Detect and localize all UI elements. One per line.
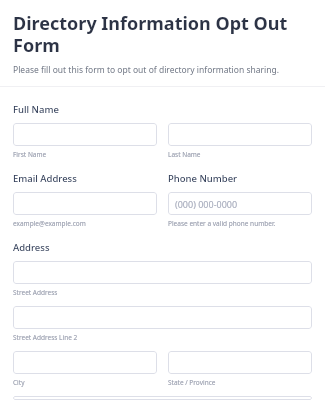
- staticText: Please enter a valid phone number.: [168, 219, 276, 228]
- staticText: Directory Information Opt Out Form: [13, 11, 312, 58]
- staticText: Full Name: [13, 103, 59, 116]
- button[interactable]: [13, 123, 157, 146]
- button[interactable]: [13, 396, 312, 400]
- button[interactable]: [168, 351, 312, 374]
- staticText: example@example.com: [13, 219, 86, 228]
- staticText: Email Address: [13, 172, 77, 185]
- staticText: State / Province: [168, 378, 216, 387]
- staticText: First Name: [13, 150, 47, 159]
- staticText: Please fill out this form to opt out of …: [13, 64, 279, 76]
- staticText: (000) 000-0000: [175, 198, 238, 210]
- staticText: City: [13, 378, 25, 387]
- staticText: Address: [13, 241, 50, 254]
- button[interactable]: [168, 123, 312, 146]
- staticText: Street Address: [13, 288, 58, 297]
- staticText: Phone Number: [168, 172, 238, 185]
- button[interactable]: [13, 192, 157, 215]
- button[interactable]: [13, 261, 312, 284]
- button[interactable]: [13, 351, 157, 374]
- staticText: Street Address Line 2: [13, 333, 78, 342]
- button[interactable]: (000) 000-0000: [168, 192, 312, 215]
- button[interactable]: [13, 306, 312, 329]
- staticText: Last Name: [168, 150, 201, 159]
